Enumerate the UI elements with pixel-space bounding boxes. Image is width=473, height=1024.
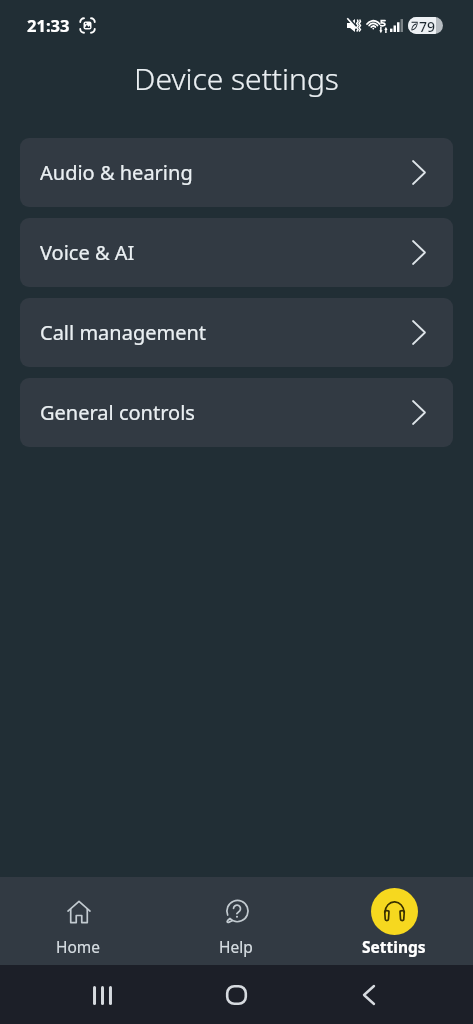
button[interactable]: Recents xyxy=(78,971,126,1019)
button[interactable]: Voice & AI xyxy=(20,218,453,287)
button[interactable]: Home xyxy=(0,877,157,965)
staticText: Audio & hearing xyxy=(40,159,193,186)
staticText: Home xyxy=(56,936,101,957)
staticText: Help xyxy=(219,936,253,957)
button[interactable]: General controls xyxy=(20,378,453,447)
button[interactable]: Audio & hearing xyxy=(20,138,453,207)
staticText: General controls xyxy=(40,399,195,426)
button[interactable]: Help xyxy=(157,877,315,965)
staticText: Call management xyxy=(40,319,207,346)
button[interactable]: Home xyxy=(212,971,260,1019)
button[interactable]: Settings xyxy=(315,877,473,965)
staticText: 21:33 xyxy=(27,14,70,36)
staticText: Device settings xyxy=(0,58,473,99)
button[interactable]: Call management xyxy=(20,298,453,367)
staticText: Settings xyxy=(362,936,426,957)
button[interactable]: Back xyxy=(345,971,393,1019)
staticText: 79 xyxy=(419,17,436,34)
staticText: Voice & AI xyxy=(40,239,135,266)
